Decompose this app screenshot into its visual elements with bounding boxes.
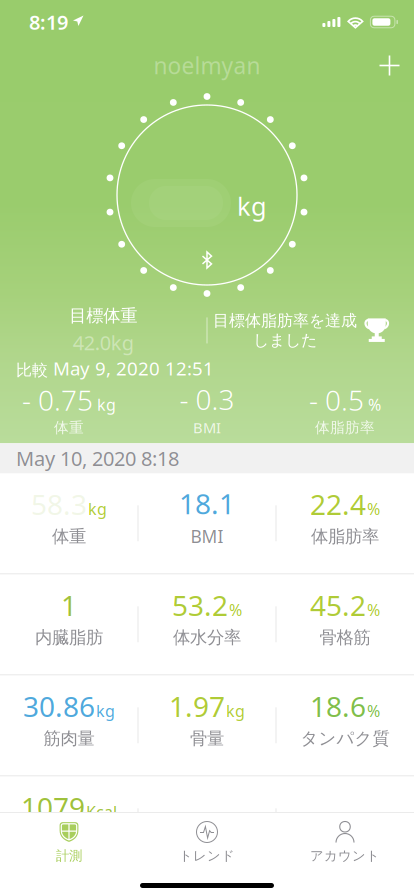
staticText: Kcal: [86, 801, 117, 822]
staticText: BMI: [193, 418, 221, 437]
staticText: kg: [226, 700, 245, 721]
staticText: kg: [88, 498, 107, 519]
button[interactable]: 計測: [0, 812, 138, 872]
staticText: 骨格筋: [319, 627, 370, 648]
staticText: 比較: [16, 360, 48, 380]
staticText: タンパク質: [300, 728, 389, 749]
staticText: kg: [96, 700, 115, 721]
staticText: %: [367, 498, 380, 519]
staticText: 目標体脂肪率を達成 しました: [213, 311, 357, 350]
staticText: トレンド: [179, 847, 235, 864]
staticText: 基礎代謝量: [26, 829, 111, 850]
staticText: - 0.5: [309, 381, 364, 419]
staticText: 18.1: [179, 485, 235, 522]
staticText: 58.3: [31, 486, 87, 523]
staticText: 筋肉量: [43, 728, 94, 749]
staticText: 骨量: [190, 728, 224, 749]
staticText: 1079: [21, 789, 85, 826]
staticText: 1.97: [169, 688, 225, 725]
staticText: 30.86: [23, 688, 95, 725]
staticText: 18.6: [310, 688, 366, 725]
staticText: 1: [61, 587, 77, 624]
button[interactable]: トレンド: [138, 812, 276, 872]
staticText: - 0.3: [179, 381, 234, 418]
staticText: %: [229, 599, 242, 620]
staticText: 42.0kg: [73, 329, 134, 356]
staticText: 53.2: [172, 587, 228, 624]
staticText: 8:19: [29, 9, 68, 35]
staticText: May 10, 2020 8:18: [16, 445, 179, 472]
staticText: 計測: [56, 847, 82, 864]
button[interactable]: アカウント: [276, 812, 414, 872]
staticText: kg: [97, 394, 116, 415]
staticText: 体脂肪率: [315, 419, 375, 437]
staticText: 45.2: [310, 587, 366, 624]
staticText: %: [368, 394, 381, 415]
staticText: 目標体重: [69, 305, 137, 326]
staticText: 体重: [54, 419, 84, 437]
staticText: May 9, 2020 12:51: [53, 356, 214, 381]
staticText: 内臓脂肪: [35, 627, 103, 648]
staticText: 体水分率: [173, 627, 241, 648]
staticText: 22.4: [310, 486, 366, 523]
staticText: 体脂肪率: [311, 526, 379, 547]
staticText: アカウント: [310, 847, 380, 864]
staticText: %: [367, 700, 380, 721]
staticText: %: [367, 599, 380, 620]
button[interactable]: Add measurement: [365, 44, 414, 87]
staticText: noelmyan: [153, 50, 260, 80]
staticText: kg: [237, 189, 267, 223]
staticText: BMI: [190, 525, 223, 548]
staticText: - 0.75: [22, 381, 93, 419]
staticText: 体重: [52, 526, 86, 547]
